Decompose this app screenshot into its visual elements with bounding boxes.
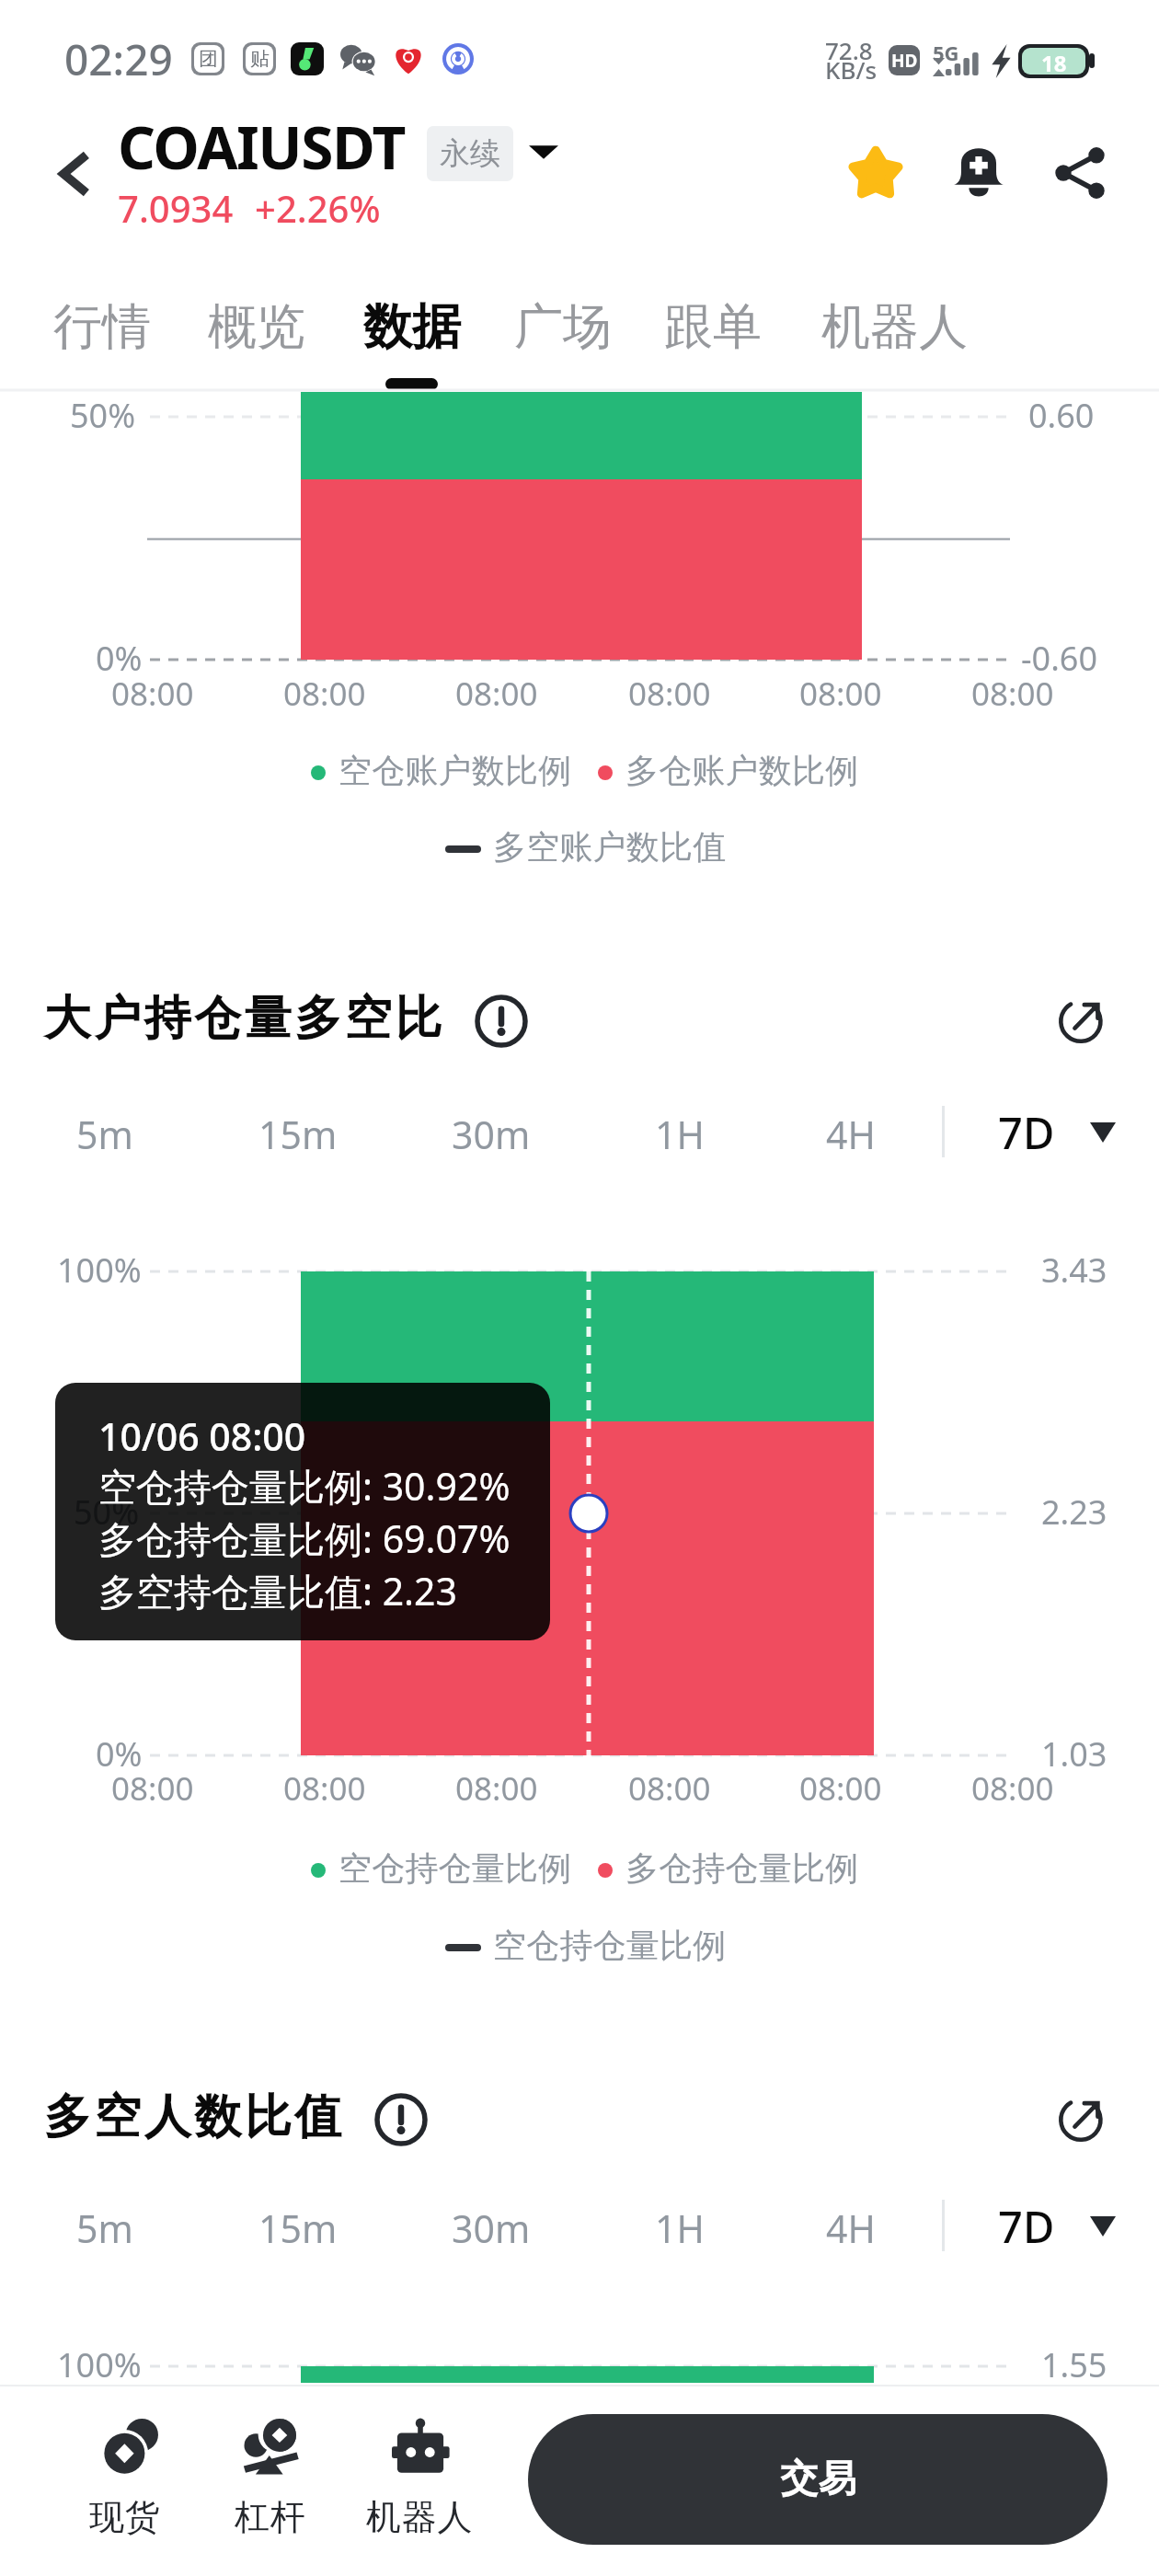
button[interactable]: Favorite [833,131,918,215]
staticText: 1.03 [1041,1731,1107,1777]
button[interactable]: 永续 [440,134,500,173]
staticText: 08:00 [455,1766,538,1811]
button[interactable]: 机器人 [350,2418,489,2565]
button[interactable]: More information [470,990,533,1052]
staticText: 贴 [250,47,270,71]
staticText: 机器人 [366,2495,474,2539]
staticText: 5m [76,2202,133,2254]
staticText: 7.0934 [118,183,234,233]
button[interactable]: Open full chart [1049,2085,1115,2151]
button[interactable]: Select contract type [518,125,569,177]
staticText: 多空账户数比值 [493,826,727,868]
staticText: 10/06 08:00 [98,1410,306,1462]
staticText: 1.55 [1041,2342,1107,2387]
button[interactable]: 15m [238,2193,358,2263]
button[interactable]: 5m [56,1099,154,1169]
button[interactable]: 30m [431,2193,551,2263]
button[interactable]: 跟单 [648,283,778,371]
staticText: 02:29 [64,30,173,88]
staticText: -0.60 [1021,636,1098,681]
staticText: 4H [826,1109,876,1160]
staticText: 15m [258,2202,338,2254]
staticText: 08:00 [283,1766,366,1811]
staticText: 0% [96,1731,143,1777]
staticText: 杠杆 [235,2495,306,2539]
staticText: 08:00 [111,672,194,716]
staticText: 广场 [514,296,612,358]
staticText: 72.8 [825,34,873,66]
staticText: 4H [826,2202,876,2254]
staticText: 2.23 [1041,1489,1107,1535]
button[interactable]: Share [1038,131,1122,215]
staticText: 100% [57,1248,142,1293]
button[interactable]: 5m [56,2193,154,2263]
staticText: 空仓持仓量比例 [339,1847,572,1889]
button[interactable]: 行情 [37,283,167,371]
staticText: 0.60 [1028,393,1095,438]
staticText: 08:00 [799,1766,882,1811]
staticText: 团 [199,47,218,71]
staticText: COAIUSDT [118,107,405,187]
button[interactable]: 1H [635,1099,725,1169]
button[interactable]: 数据 [347,283,477,371]
staticText: 多仓账户数比例 [625,750,859,791]
staticText: 空仓账户数比例 [339,750,572,791]
staticText: 08:00 [971,1766,1054,1811]
staticText: KB/s [825,53,878,86]
button[interactable]: Open full chart [1049,986,1115,1052]
button[interactable]: 15m [238,1099,358,1169]
staticText: 08:00 [283,672,366,716]
button[interactable]: More information [370,2088,432,2151]
staticText: 30m [452,2202,531,2254]
staticText: HD [891,49,918,73]
staticText: 数据 [363,296,461,358]
staticText: 1H [655,1109,705,1160]
staticText: 3.43 [1041,1248,1107,1293]
button[interactable]: 交易 [528,2414,1107,2545]
staticText: 空仓持仓量比例: 30.92% [98,1460,511,1512]
staticText: 30m [452,1109,531,1160]
staticText: +2.26% [255,183,381,233]
staticText: 现货 [89,2495,161,2539]
staticText: 概览 [208,296,305,358]
button[interactable]: Back [35,134,114,213]
button[interactable]: 1H [635,2193,725,2263]
staticText: 行情 [53,296,151,358]
button[interactable]: 机器人 [805,283,984,371]
button[interactable]: 7D [983,2190,1130,2263]
button[interactable]: 30m [431,1099,551,1169]
staticText: 机器人 [821,296,968,358]
staticText: 多仓持仓量比例: 69.07% [98,1512,511,1564]
staticText: 0% [96,636,143,681]
button[interactable]: 杠杆 [201,2418,340,2565]
staticText: 交易 [780,2455,856,2503]
button[interactable]: 7D [983,1096,1130,1169]
staticText: 5m [76,1109,133,1160]
button[interactable]: 4H [806,2193,896,2263]
staticText: 08:00 [971,672,1054,716]
staticText: 1H [655,2202,705,2254]
staticText: 08:00 [628,672,711,716]
staticText: 多仓持仓量比例 [625,1847,859,1889]
staticText: 跟单 [664,296,762,358]
staticText: 多空持仓量比值: 2.23 [98,1565,457,1616]
staticText: 多空人数比值 [42,2087,343,2146]
staticText: 50% [70,393,136,438]
staticText: 08:00 [111,1766,194,1811]
staticText: 空仓持仓量比例 [493,1925,727,1966]
staticText: 永续 [440,134,500,173]
button[interactable]: 概览 [191,283,322,371]
staticText: 08:00 [628,1766,711,1811]
staticText: 15m [258,1109,338,1160]
staticText: 08:00 [799,672,882,716]
staticText: 18 [1041,48,1067,75]
button[interactable]: Price alert [936,127,1021,212]
staticText: 08:00 [455,672,538,716]
button[interactable]: 广场 [498,283,628,371]
button[interactable]: 现货 [55,2418,195,2565]
staticText: 7D [998,2197,1055,2256]
staticText: 100% [57,2342,142,2387]
staticText: 50% [74,1489,140,1535]
staticText: 5G [933,39,959,66]
button[interactable]: 4H [806,1099,896,1169]
